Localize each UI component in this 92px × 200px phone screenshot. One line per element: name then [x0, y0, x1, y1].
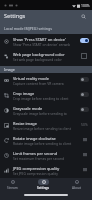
button[interactable]: About	[61, 178, 92, 195]
button[interactable]: Crop image	[0, 88, 92, 103]
staticText: About	[72, 186, 81, 190]
staticText: Settings	[4, 12, 26, 20]
button[interactable]: Edit value	[82, 167, 87, 172]
staticText: Limit frames per second	[13, 151, 58, 156]
button[interactable]: Background color	[81, 53, 87, 59]
button[interactable]: Settings	[25, 178, 61, 195]
button[interactable]: Grayscale mode	[0, 103, 92, 118]
button[interactable]: Switch on	[80, 38, 89, 43]
staticText: Capture content from VR camera	[13, 81, 64, 85]
staticText: Web page background color	[13, 52, 65, 57]
staticText: Rotate image before sending to client	[13, 141, 72, 145]
button[interactable]: JPEG compression quality	[0, 163, 92, 178]
staticText: Rotate image clockwise	[13, 136, 56, 141]
button[interactable]: Show 'Press START on device'	[0, 34, 92, 49]
button[interactable]: Virtual reality mode	[0, 73, 92, 88]
staticText: Resize image	[13, 121, 37, 126]
button[interactable]: Switch off	[80, 77, 89, 82]
button[interactable]: 50%	[81, 122, 88, 127]
staticText: JPEG compression quality	[13, 166, 60, 171]
button[interactable]: Edit value	[82, 152, 87, 157]
staticText: Virtual reality mode	[13, 76, 49, 81]
staticText: Set maximum frames per second	[13, 156, 65, 160]
staticText: Grayscale mode	[13, 106, 43, 111]
button[interactable]: Switch off	[80, 92, 89, 97]
staticText: Image	[4, 67, 15, 72]
staticText: Settings	[37, 186, 50, 190]
button[interactable]: Edit value	[82, 137, 87, 142]
staticText: Resize image before sending to client	[13, 126, 71, 130]
button[interactable]: Rotate image clockwise	[0, 133, 92, 148]
staticText: Set web page background color	[13, 57, 62, 61]
button[interactable]: Search	[79, 12, 87, 20]
button[interactable]: Limit frames per second	[0, 148, 92, 163]
staticText: Show 'Press START on device'	[13, 37, 66, 42]
staticText: 100%	[81, 3, 90, 8]
button[interactable]: Switch off	[80, 107, 89, 112]
button[interactable]: Stream	[0, 178, 25, 195]
staticText: Crop image	[13, 91, 35, 96]
button[interactable]: Web page background color	[0, 49, 92, 64]
staticText: Local mode (MJPEG) settings	[4, 26, 52, 31]
button[interactable]: Resize image	[0, 118, 92, 133]
staticText: Crop image before sending to client	[13, 96, 69, 100]
staticText: Grayscale image before sending to client	[13, 111, 76, 115]
staticText: Stream	[7, 186, 18, 190]
staticText: 50%	[81, 122, 88, 127]
staticText: Set JPEG compression quality	[13, 171, 58, 175]
staticText: Show 'Press START on device' on web page	[13, 42, 76, 46]
